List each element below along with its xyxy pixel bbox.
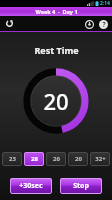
staticText: 28 [31, 155, 38, 163]
staticText: ? [102, 20, 106, 29]
button[interactable]: Reset [3, 17, 16, 30]
button[interactable]: Stop [60, 178, 102, 194]
staticText: Week 4 · Day 1 [35, 8, 78, 15]
staticText: 20 [53, 155, 60, 163]
button[interactable]: +30sec [10, 178, 52, 194]
button[interactable]: 20 [68, 152, 88, 166]
staticText: 23 [9, 155, 16, 163]
button[interactable]: 32+ [90, 152, 110, 166]
staticText: 2:14 [100, 0, 110, 7]
staticText: 32+ [95, 155, 106, 163]
button[interactable]: 23 [2, 152, 22, 166]
staticText: +30sec [19, 181, 43, 191]
button[interactable]: Help [97, 18, 109, 30]
staticText: Rest Time [34, 44, 79, 56]
button[interactable]: 20 [46, 152, 66, 166]
staticText: Stop [73, 181, 89, 191]
staticText: 20 [75, 155, 82, 163]
button[interactable]: 28 [24, 152, 44, 166]
button[interactable]: Timer settings [83, 18, 95, 30]
staticText: 20 [43, 86, 69, 116]
